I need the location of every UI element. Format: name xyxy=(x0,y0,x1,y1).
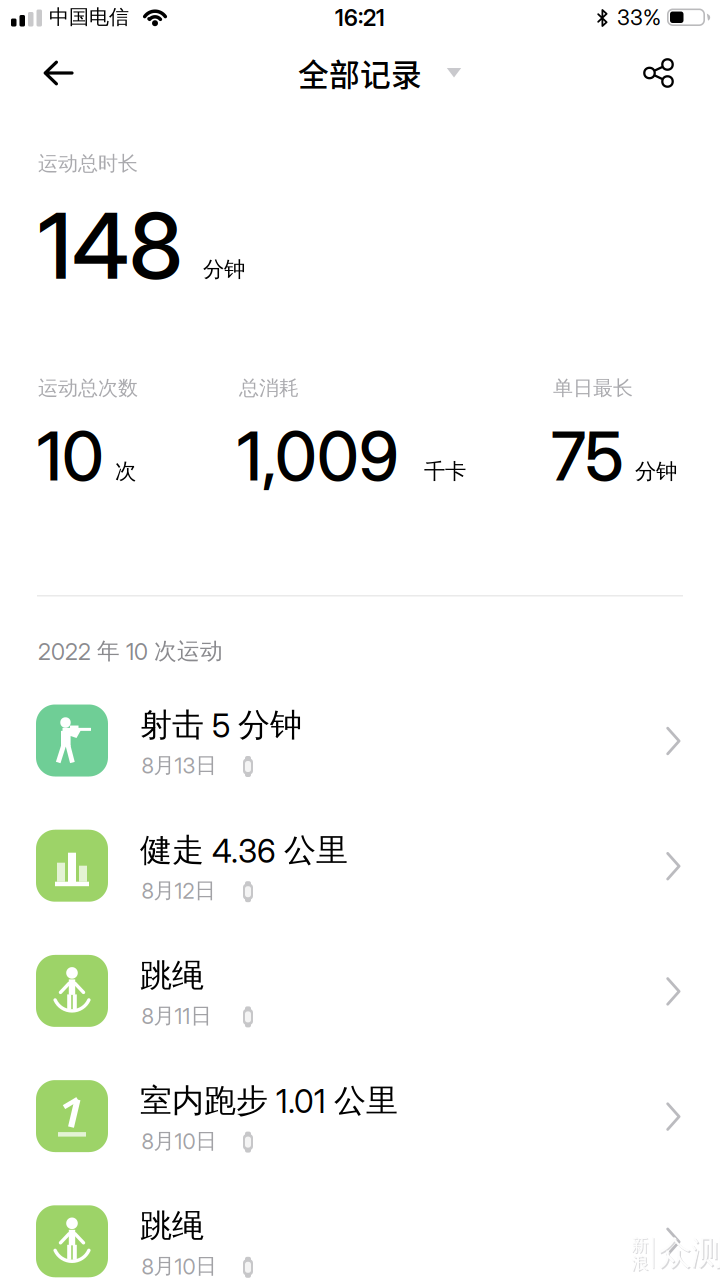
staticText: 众测 xyxy=(659,1233,720,1275)
staticText: 10 xyxy=(37,416,104,497)
staticText: 健走 4.36 公里 xyxy=(140,830,348,870)
button[interactable]: Back xyxy=(36,53,80,93)
button[interactable]: 射击 5 分钟 xyxy=(0,678,720,803)
staticText: 跳绳 xyxy=(140,955,204,996)
staticText: 1,009 xyxy=(237,416,399,497)
staticText: 33% xyxy=(617,4,661,30)
staticText: 浪 xyxy=(632,1253,649,1275)
staticText: 射击 5 分钟 xyxy=(140,705,302,745)
staticText: 8月10日 xyxy=(141,1128,216,1154)
staticText: 单日最长 xyxy=(553,375,633,401)
button[interactable]: 全部记录 xyxy=(260,50,464,94)
staticText: 8月11日 xyxy=(141,1002,211,1029)
staticText: 分钟 xyxy=(635,458,677,485)
staticText: 8月12日 xyxy=(141,877,215,904)
staticText: 中国电信 xyxy=(49,4,129,30)
staticText: 浪 xyxy=(631,1252,648,1274)
staticText: 运动总次数 xyxy=(38,375,138,401)
button[interactable]: 室内跑步 1.01 公里 xyxy=(0,1054,720,1179)
staticText: 总消耗 xyxy=(239,375,299,401)
staticText: 148 xyxy=(38,191,183,301)
staticText: 分钟 xyxy=(203,256,245,283)
staticText: 75 xyxy=(551,416,624,497)
staticText: 8月10日 xyxy=(141,1253,216,1280)
button[interactable]: Share xyxy=(641,56,679,90)
staticText: 新 xyxy=(632,1235,649,1257)
staticText: 全部记录 xyxy=(298,50,422,95)
staticText: 16:21 xyxy=(335,4,385,31)
staticText: 2022 年 10 次运动 xyxy=(38,637,223,666)
staticText: 8月13日 xyxy=(141,752,216,779)
button[interactable]: 健走 4.36 公里 xyxy=(0,803,720,928)
staticText: 新 xyxy=(631,1234,648,1256)
button[interactable]: 跳绳 xyxy=(0,928,720,1053)
button[interactable]: 跳绳 xyxy=(0,1179,720,1280)
staticText: 室内跑步 1.01 公里 xyxy=(140,1081,398,1121)
staticText: 运动总时长 xyxy=(38,151,138,176)
staticText: 跳绳 xyxy=(140,1206,204,1246)
staticText: 次 xyxy=(115,458,136,485)
staticText: 众测 xyxy=(658,1232,720,1274)
staticText: 千卡 xyxy=(424,458,466,485)
